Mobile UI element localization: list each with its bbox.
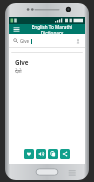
button[interactable]: Voice search	[74, 37, 82, 45]
button[interactable]: Add to favourites	[24, 149, 34, 159]
button[interactable]: Copy	[48, 149, 58, 159]
button[interactable]: Open navigation menu	[12, 25, 20, 33]
staticText: English To Marathi Dictionary	[22, 24, 82, 34]
button[interactable]: Give	[9, 34, 85, 47]
staticText: देणे	[15, 67, 22, 74]
staticText: Give	[15, 58, 29, 66]
button[interactable]: Give	[11, 52, 83, 146]
staticText: Give	[20, 38, 30, 44]
button[interactable]: Share	[60, 149, 70, 159]
button[interactable]: Pronounce	[36, 149, 46, 159]
